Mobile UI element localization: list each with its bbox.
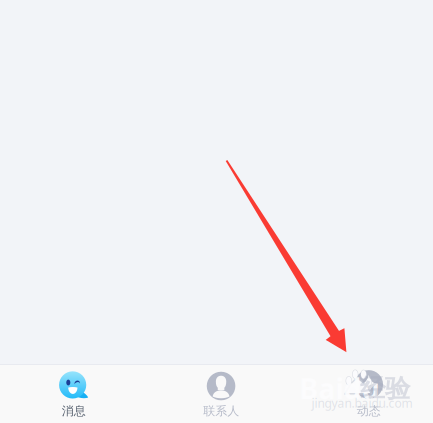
staticText: 联系人 xyxy=(203,404,239,418)
staticText: 动态 xyxy=(357,404,381,418)
staticText: jingyan.baidu.com xyxy=(311,395,412,411)
staticText: Baidu xyxy=(299,370,379,407)
button[interactable]: 消息 xyxy=(0,365,147,423)
staticText: 消息 xyxy=(62,404,86,418)
staticText: 经验 xyxy=(360,373,410,404)
button[interactable]: 联系人 xyxy=(147,365,295,423)
button[interactable]: 动态 xyxy=(295,365,433,423)
